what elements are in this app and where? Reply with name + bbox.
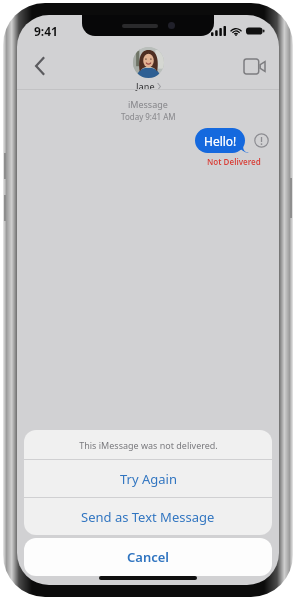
button[interactable]: FaceTime video call [237,49,271,83]
staticText: Jane [136,80,155,92]
staticText: Today 9:41 AM [121,111,176,122]
button[interactable]: Jane [133,47,164,92]
staticText: Cancel [127,548,170,566]
staticText: Hello! [204,133,237,149]
staticText: This iMessage was not delivered. [79,439,218,451]
button[interactable]: Message not delivered [254,133,269,148]
staticText: iMessage [128,98,168,110]
staticText: Try Again [120,470,177,488]
staticText: Not Delivered [207,156,261,167]
staticText: Send as Text Message [81,508,215,526]
button[interactable]: Back [23,49,57,83]
button[interactable]: Send as Text Message [24,498,272,535]
button[interactable]: Cancel [24,538,272,576]
button[interactable]: Try Again [24,460,272,497]
staticText: 9:41 [34,23,58,39]
